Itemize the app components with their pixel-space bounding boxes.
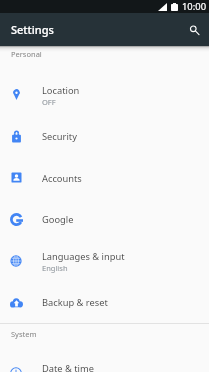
button[interactable]: Languages & input (0, 240, 209, 282)
button[interactable]: Accounts (0, 157, 209, 199)
staticText: Google (42, 213, 74, 226)
staticText: Security (42, 130, 77, 143)
staticText: System (11, 329, 37, 339)
staticText: Date & time (42, 362, 94, 372)
staticText: Backup & reset (42, 296, 108, 309)
button[interactable]: Security (0, 115, 209, 157)
button[interactable]: Date & time (0, 352, 209, 372)
staticText: Accounts (42, 172, 82, 185)
staticText: English (42, 263, 68, 273)
staticText: Settings (11, 22, 54, 37)
staticText: Languages & input (42, 250, 125, 263)
button[interactable]: Search (178, 14, 209, 45)
button[interactable]: Location (0, 74, 209, 116)
staticText: Personal (11, 49, 42, 59)
staticText: 10:00 (182, 0, 207, 13)
button[interactable]: Google (0, 198, 209, 240)
staticText: OFF (42, 97, 56, 107)
staticText: Location (42, 84, 80, 97)
button[interactable]: Backup & reset (0, 281, 209, 323)
